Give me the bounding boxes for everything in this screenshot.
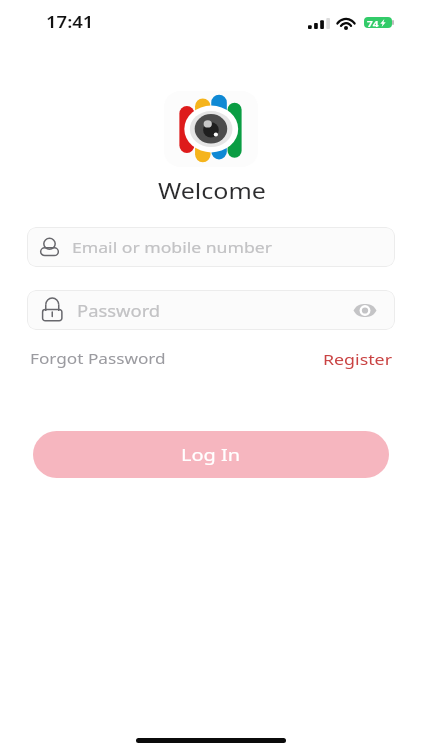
staticText: Forgot Password [30, 349, 166, 368]
staticText: Email or mobile number [72, 237, 272, 257]
staticText: Welcome [158, 177, 266, 205]
button[interactable]: Show password [352, 298, 378, 322]
button[interactable]: Forgot Password [28, 345, 168, 372]
button[interactable]: Password [27, 290, 395, 330]
staticText: Register [323, 349, 392, 369]
staticText: Log In [181, 443, 241, 466]
staticText: 74 [367, 18, 379, 27]
button[interactable]: Email or mobile number [27, 227, 395, 267]
button[interactable]: Log In [33, 431, 389, 478]
staticText: 17:41 [46, 11, 94, 32]
button[interactable]: Register [321, 345, 394, 373]
staticText: Password [77, 300, 161, 321]
